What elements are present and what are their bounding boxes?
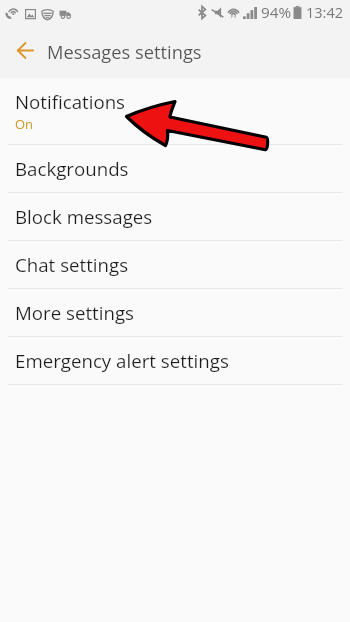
button[interactable]: More settings — [0, 289, 350, 337]
button[interactable]: Backgrounds — [0, 145, 350, 193]
button[interactable]: Navigate up — [7, 32, 43, 68]
button[interactable]: Emergency alert settings — [0, 337, 350, 385]
button[interactable]: Chat settings — [0, 241, 350, 289]
staticText: Block messages — [15, 204, 153, 229]
staticText: 13:42 — [306, 3, 343, 23]
staticText: Chat settings — [15, 252, 129, 277]
staticText: Notifications — [15, 89, 126, 114]
staticText: Emergency alert settings — [15, 348, 229, 373]
button[interactable]: Block messages — [0, 193, 350, 241]
staticText: 94% — [261, 2, 292, 23]
staticText: On — [15, 115, 34, 133]
staticText: Messages settings — [47, 39, 202, 64]
staticText: Backgrounds — [15, 156, 129, 181]
staticText: More settings — [15, 300, 134, 325]
button[interactable]: Notifications — [0, 78, 350, 145]
